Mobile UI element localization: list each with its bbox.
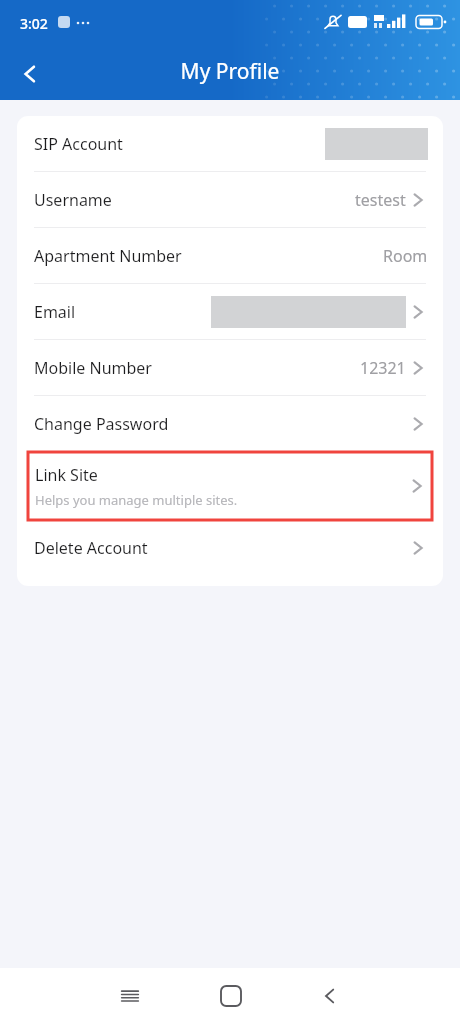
staticText: Username	[34, 189, 112, 211]
button[interactable]: Username	[17, 172, 443, 227]
button[interactable]: SIP Account	[17, 116, 443, 171]
staticText: My Profile	[0, 57, 460, 86]
staticText: SIP Account	[34, 133, 123, 155]
staticText: Helps you manage multiple sites.	[35, 491, 238, 509]
staticText: Room	[383, 245, 428, 267]
staticText: Apartment Number	[34, 245, 182, 267]
staticText: Link Site	[35, 464, 98, 486]
staticText: 3:02	[20, 14, 48, 33]
button[interactable]: Email	[17, 284, 443, 339]
staticText: Change Password	[34, 413, 169, 435]
staticText: Email	[34, 301, 76, 323]
button[interactable]: Home	[205, 970, 257, 1022]
staticText: 12321	[360, 357, 406, 379]
button[interactable]: Recent apps	[104, 970, 156, 1022]
button[interactable]: Back	[6, 50, 54, 98]
button[interactable]: Change Password	[17, 396, 443, 451]
button[interactable]: Mobile Number	[17, 340, 443, 395]
staticText: testest	[355, 189, 406, 211]
button[interactable]: Delete Account	[17, 520, 443, 575]
button[interactable]: Apartment Number	[17, 228, 443, 283]
button[interactable]: Back	[304, 970, 356, 1022]
button[interactable]: Link Site	[28, 452, 432, 520]
staticText: Mobile Number	[34, 357, 152, 379]
staticText: Delete Account	[34, 537, 148, 559]
